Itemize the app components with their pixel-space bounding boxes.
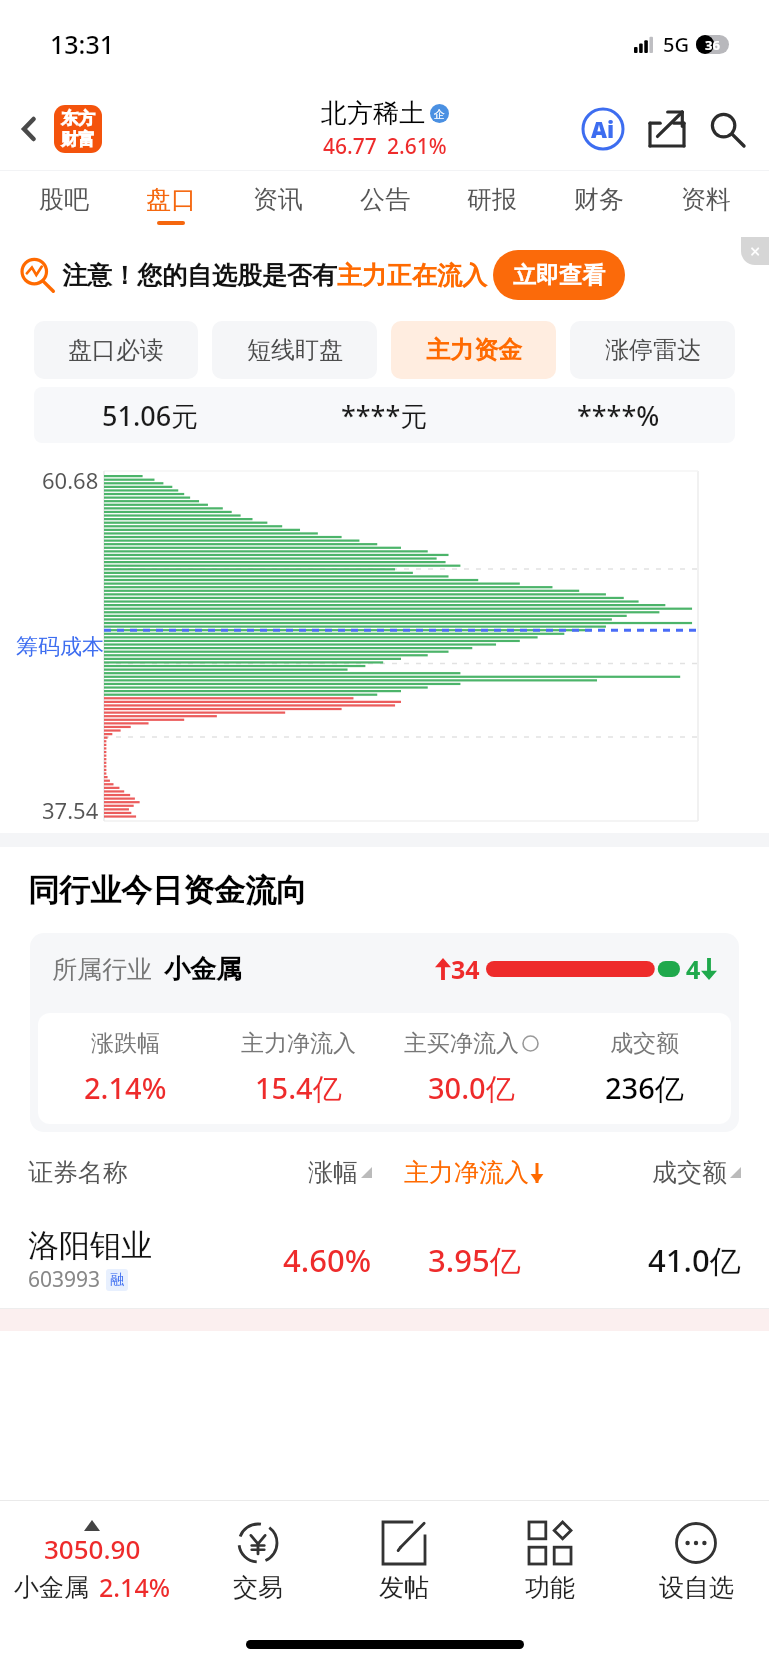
staticText: 涨停雷达 [605, 335, 701, 365]
staticText: 股吧 [39, 184, 89, 215]
staticText: 2.14% [99, 1570, 171, 1604]
button[interactable]: 资讯 [224, 171, 331, 237]
button[interactable]: 3050.90 [0, 1501, 184, 1623]
staticText: 41.0亿 [648, 1239, 741, 1281]
staticText: 短线盯盘 [247, 335, 343, 365]
staticText: 北方稀土 [321, 97, 425, 130]
staticText: 2.14% [84, 1068, 167, 1107]
button[interactable]: 研报 [438, 171, 545, 237]
button[interactable]: East Money [54, 105, 102, 153]
staticText: 成交额 [610, 1029, 679, 1058]
button[interactable]: 所属行业 [30, 933, 739, 1132]
staticText: 13:31 [50, 27, 115, 61]
button[interactable]: 交易 [184, 1501, 331, 1623]
staticText: 37.54 [42, 795, 99, 825]
staticText: 盘口 [146, 184, 196, 215]
staticText: 5G [663, 31, 689, 58]
staticText: 立即查看 [513, 261, 605, 290]
staticText: 交易 [233, 1572, 283, 1603]
staticText: 236亿 [605, 1068, 684, 1108]
button[interactable]: Share [641, 103, 693, 155]
button[interactable]: AI assistant [577, 103, 629, 155]
staticText: 所属行业 [52, 954, 152, 985]
staticText: 36 [705, 36, 720, 54]
button[interactable]: 成交额 [577, 1157, 741, 1188]
staticText: 4.60% [283, 1239, 372, 1281]
staticText: 发帖 [379, 1572, 429, 1603]
staticText: 2.61% [387, 132, 447, 161]
staticText: 主力资金 [426, 335, 522, 365]
staticText: 功能 [525, 1572, 575, 1603]
staticText: 东方 [61, 108, 95, 129]
staticText: 51.06元 [102, 397, 199, 434]
staticText: 盘口必读 [68, 335, 164, 365]
button[interactable]: 资料 [652, 171, 759, 237]
staticText: 资料 [681, 184, 731, 215]
staticText: 主买净流入 [404, 1029, 519, 1058]
button[interactable]: 涨停雷达 [570, 321, 735, 379]
staticText: 34 [451, 952, 480, 986]
button[interactable]: Close [741, 237, 769, 265]
staticText: 成交额 [652, 1157, 727, 1188]
staticText: 证券名称 [28, 1157, 208, 1188]
staticText: 60.68 [42, 465, 99, 495]
staticText: ****% [577, 397, 660, 434]
staticText: 注意！您的自选股是否有 [62, 260, 337, 291]
staticText: 3050.90 [44, 1531, 141, 1566]
staticText: 603993 [28, 1265, 101, 1294]
staticText: 15.4亿 [255, 1068, 342, 1108]
button[interactable]: 股吧 [10, 171, 117, 237]
button[interactable]: 盘口 [117, 171, 224, 237]
staticText: Ai [591, 114, 615, 144]
staticText: 主力正在流入 [337, 260, 487, 291]
staticText: 筹码成本 [16, 633, 104, 661]
staticText: 30.0亿 [428, 1068, 515, 1108]
button[interactable]: 功能 [477, 1501, 623, 1623]
staticText: 4 [686, 952, 701, 986]
button[interactable]: 设自选 [623, 1501, 769, 1623]
staticText: 公告 [360, 184, 410, 215]
staticText: 小金属 [14, 1572, 89, 1603]
staticText: × [750, 239, 761, 264]
staticText: 融 [110, 1271, 124, 1289]
staticText: 同行业今日资金流向 [28, 871, 307, 910]
button[interactable]: 财务 [545, 171, 652, 237]
button[interactable]: 主力净流入 [372, 1157, 577, 1188]
staticText: 主力净流入 [404, 1157, 529, 1188]
staticText: 企 [434, 107, 445, 121]
staticText: 资讯 [253, 184, 303, 215]
staticText: 小金属 [164, 953, 242, 986]
staticText: 主力净流入 [241, 1029, 356, 1058]
button[interactable]: 发帖 [331, 1501, 477, 1623]
staticText: 财务 [574, 184, 624, 215]
button[interactable]: 公告 [331, 171, 438, 237]
button[interactable]: 洛阳钼业 [28, 1212, 741, 1308]
button[interactable]: 涨幅 [208, 1157, 372, 1188]
staticText: ****元 [341, 397, 428, 434]
button[interactable]: 盘口必读 [34, 321, 198, 379]
staticText: 3.95亿 [428, 1239, 521, 1281]
staticText: 洛阳钼业 [28, 1226, 152, 1265]
button[interactable]: Back [8, 107, 52, 151]
staticText: 涨跌幅 [91, 1029, 160, 1058]
staticText: 研报 [467, 184, 517, 215]
staticText: 设自选 [659, 1572, 734, 1603]
staticText: 46.77 [323, 132, 377, 161]
button[interactable]: 立即查看 [493, 250, 625, 300]
button[interactable]: Search [701, 103, 753, 155]
button[interactable]: 主力资金 [391, 321, 556, 379]
staticText: 财富 [61, 129, 95, 150]
staticText: 涨幅 [308, 1157, 358, 1188]
button[interactable]: 短线盯盘 [212, 321, 377, 379]
